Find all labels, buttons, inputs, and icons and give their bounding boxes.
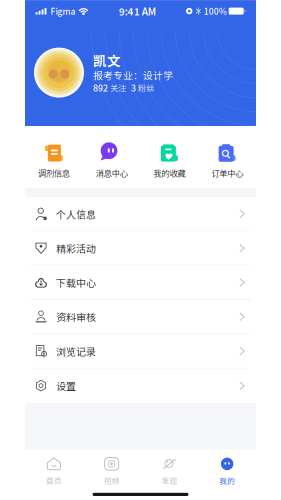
staticText: 发现 <box>161 475 177 486</box>
staticText: 粉丝 <box>138 82 154 94</box>
button[interactable]: 订单中心 <box>198 126 256 188</box>
button[interactable]: 浏览记录 <box>25 334 256 369</box>
staticText: 892 <box>93 81 108 94</box>
button[interactable]: 精彩活动 <box>25 231 256 266</box>
button[interactable]: 我的 <box>198 449 256 489</box>
staticText: 精彩活动 <box>56 241 96 255</box>
staticText: 我的收藏 <box>153 167 185 179</box>
staticText: 首页 <box>46 475 62 486</box>
staticText: 下载中心 <box>56 275 96 290</box>
staticText: 9:41 AM <box>119 4 156 18</box>
staticText: 100% <box>204 5 227 17</box>
button[interactable]: 发现 <box>140 449 198 489</box>
staticText: 个人信息 <box>56 207 96 221</box>
staticText: 我的 <box>219 475 235 486</box>
button[interactable]: 首页 <box>25 449 83 489</box>
staticText: 资料审核 <box>56 309 96 324</box>
staticText: 设置 <box>56 378 76 393</box>
staticText: 订单中心 <box>211 167 243 179</box>
button[interactable]: 设置 <box>25 369 256 403</box>
button[interactable]: 资料审核 <box>25 300 256 334</box>
button[interactable]: 下载中心 <box>25 266 256 300</box>
staticText: 报考专业：设计学 <box>93 68 173 82</box>
button[interactable]: 个人信息 <box>25 197 256 231</box>
staticText: 关注 <box>110 82 126 94</box>
staticText: Figma <box>50 5 75 17</box>
staticText: 凯文 <box>93 50 121 70</box>
button[interactable]: 我的收藏 <box>140 126 198 188</box>
button[interactable]: 视频 <box>83 449 141 489</box>
staticText: 视频 <box>104 475 120 486</box>
button[interactable]: 消息中心 <box>83 126 141 188</box>
staticText: 消息中心 <box>96 167 128 179</box>
button[interactable]: 调剂信息 <box>25 126 83 188</box>
staticText: 3 <box>131 81 136 94</box>
staticText: 浏览记录 <box>56 344 96 358</box>
staticText: 调剂信息 <box>38 167 70 179</box>
